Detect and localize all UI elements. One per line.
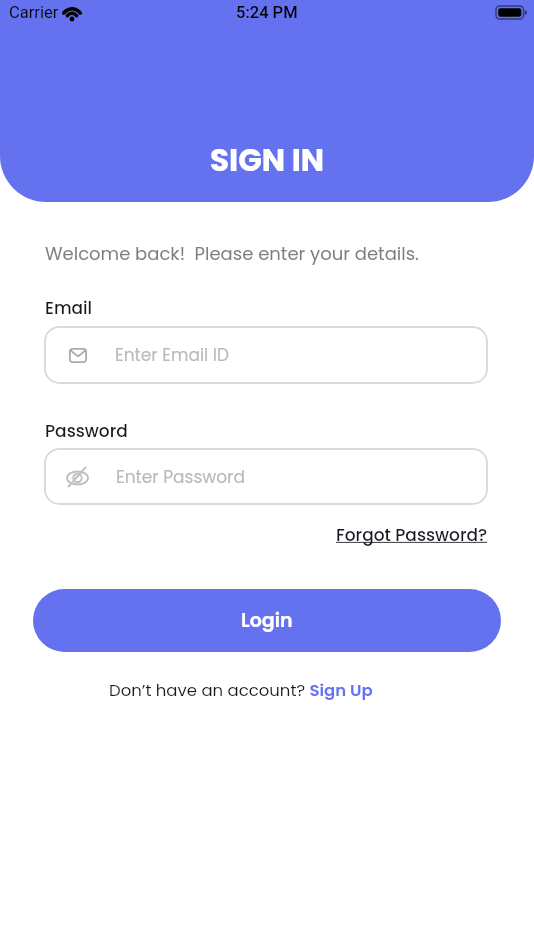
staticText: Login [241, 607, 293, 634]
button[interactable]: Enter Password [44, 448, 488, 505]
staticText: Email [45, 296, 93, 320]
staticText: Enter Email ID [115, 343, 230, 367]
staticText: Enter Password [116, 465, 245, 489]
staticText: Carrier [9, 3, 59, 22]
button[interactable]: Login [33, 589, 501, 652]
staticText: Password [45, 419, 128, 443]
button[interactable]: Forgot Password? [336, 523, 488, 547]
button[interactable]: Enter Email ID [44, 326, 488, 384]
staticText: 5:24 PM [236, 3, 298, 22]
staticText: Welcome back! Please enter your details. [45, 241, 419, 266]
button[interactable]: Don’t have an account? Sign Up [109, 679, 373, 702]
staticText: SIGN IN [210, 138, 325, 181]
